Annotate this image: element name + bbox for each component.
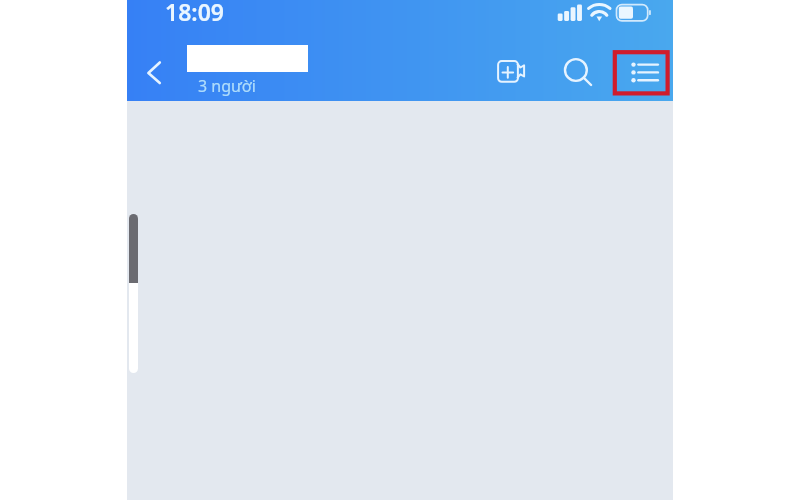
button[interactable]: Menu	[613, 51, 670, 97]
button[interactable]: Back	[138, 51, 182, 95]
button[interactable]: Video call	[495, 58, 531, 94]
button[interactable]: Search	[564, 56, 604, 96]
staticText: 3 người	[198, 75, 256, 97]
staticText: 18:09	[165, 0, 224, 27]
button[interactable]: 3 người	[183, 42, 316, 98]
